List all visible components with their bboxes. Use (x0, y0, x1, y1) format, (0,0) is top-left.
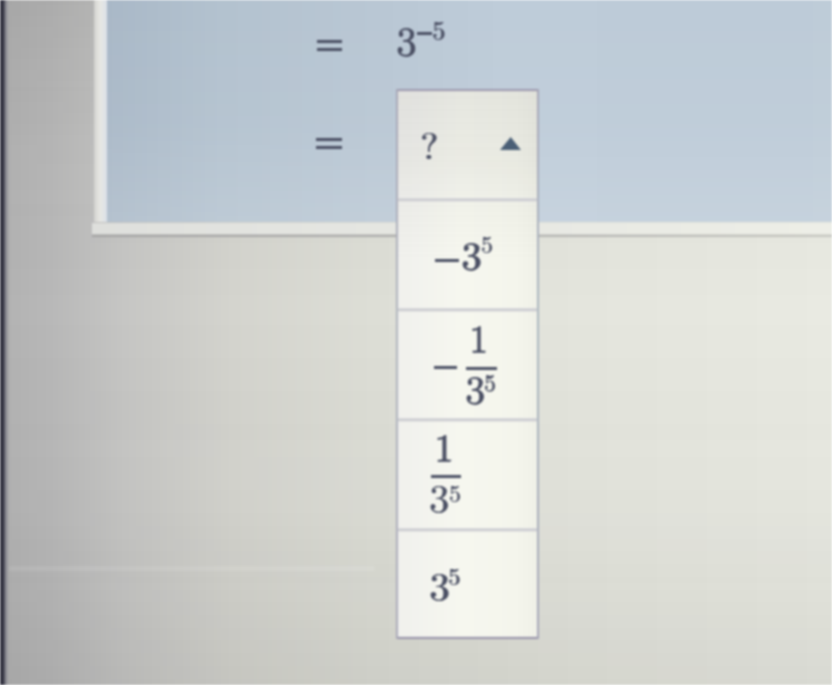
button[interactable] (396, 419, 539, 529)
staticText: 5 (448, 558, 460, 592)
staticText: 3 (465, 358, 486, 416)
staticText: 5 (484, 364, 496, 398)
staticText: 1 (434, 417, 454, 472)
staticText: ? (420, 116, 438, 170)
button[interactable] (396, 309, 539, 419)
staticText: 5 (433, 11, 447, 48)
staticText: 3 (465, 359, 486, 417)
staticText: 3 (430, 555, 451, 613)
staticText: 5 (448, 558, 460, 592)
staticText: 5 (484, 365, 496, 399)
button[interactable]: Collapse answer choices (500, 137, 521, 150)
staticText: 5 (484, 364, 496, 398)
staticText: 5 (481, 226, 493, 260)
staticText: ? (420, 116, 438, 170)
staticText: 3 (429, 467, 450, 525)
staticText: 1 (434, 418, 454, 473)
staticText: 1 (469, 308, 489, 363)
staticText: 3 (396, 10, 418, 70)
staticText: 5 (449, 475, 461, 509)
staticText: ? (421, 116, 439, 170)
staticText: 1 (435, 417, 455, 472)
staticText: 3 (462, 224, 483, 282)
staticText: 3 (429, 467, 450, 525)
staticText: 5 (432, 11, 446, 48)
staticText: 3 (461, 225, 482, 283)
staticText: 3 (396, 9, 418, 69)
button[interactable] (396, 199, 539, 309)
staticText: 3 (465, 358, 486, 416)
staticText: 5 (449, 475, 461, 509)
staticText: 3 (461, 224, 482, 282)
staticText: 1 (469, 309, 489, 364)
staticText: 3 (396, 9, 418, 69)
staticText: 3 (429, 467, 450, 525)
staticText: 5 (432, 11, 446, 48)
staticText: 3 (429, 555, 450, 613)
staticText: 5 (481, 226, 493, 260)
button[interactable] (396, 529, 539, 639)
staticText: 1 (469, 308, 489, 363)
staticText: 3 (429, 555, 450, 613)
staticText: 5 (449, 558, 461, 592)
button[interactable] (396, 89, 539, 199)
staticText: 5 (481, 226, 493, 260)
staticText: 5 (449, 475, 461, 509)
